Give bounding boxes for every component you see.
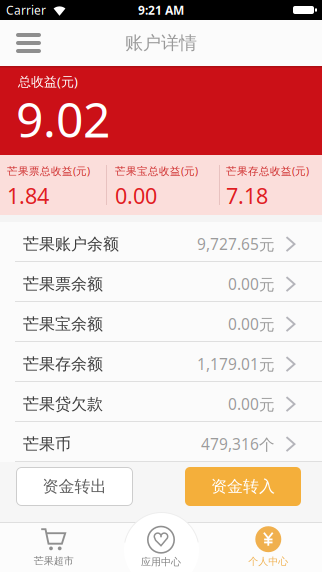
staticText: 479,316个 (201, 433, 275, 455)
button[interactable]: 芒果超市 (0, 522, 107, 572)
staticText: 9.02 (16, 86, 110, 152)
staticText: 资金转出 (42, 476, 106, 497)
staticText: 1.84 (7, 181, 49, 210)
button[interactable]: 芒果币 (0, 422, 322, 462)
button[interactable]: 个人中心 (215, 522, 322, 572)
button[interactable]: 芒果账户余额 (0, 222, 322, 262)
button[interactable]: 资金转出 (16, 467, 133, 506)
staticText: 0.00元 (228, 393, 275, 415)
button[interactable]: 芒果存余额 (0, 342, 322, 382)
staticText: 7.18 (226, 181, 268, 210)
staticText: 0.00 (115, 181, 157, 210)
staticText: 芒果账户余额 (23, 234, 119, 254)
staticText: Carrier (6, 2, 46, 18)
staticText: 芒果币 (23, 434, 71, 454)
staticText: 芒果票总收益(元) (7, 164, 90, 178)
button[interactable]: 芒果宝余额 (0, 302, 322, 342)
staticText: 总收益(元) (18, 72, 78, 90)
staticText: 9,727.65元 (197, 233, 275, 255)
staticText: 芒果存总收益(元) (226, 164, 309, 178)
staticText: 应用中心 (141, 556, 181, 568)
button[interactable]: Menu (0, 20, 41, 66)
staticText: 芒果宝余额 (23, 314, 103, 334)
staticText: 1,179.01元 (197, 353, 275, 375)
button[interactable]: 资金转入 (185, 467, 301, 506)
staticText: 芒果票余额 (23, 274, 103, 294)
staticText: 9:21 AM (138, 2, 184, 18)
staticText: 资金转入 (211, 476, 275, 497)
staticText: 芒果超市 (34, 555, 74, 567)
staticText: 芒果存余额 (23, 354, 103, 374)
button[interactable]: 应用中心 (107, 522, 215, 572)
button[interactable]: 芒果票余额 (0, 262, 322, 302)
staticText: 0.00元 (228, 313, 275, 335)
staticText: 个人中心 (248, 555, 288, 568)
staticText: 芒果贷欠款 (23, 394, 103, 414)
staticText: 芒果宝总收益(元) (115, 164, 198, 178)
staticText: 账户详情 (125, 32, 197, 54)
button[interactable]: 芒果贷欠款 (0, 382, 322, 422)
staticText: 0.00元 (228, 273, 275, 295)
